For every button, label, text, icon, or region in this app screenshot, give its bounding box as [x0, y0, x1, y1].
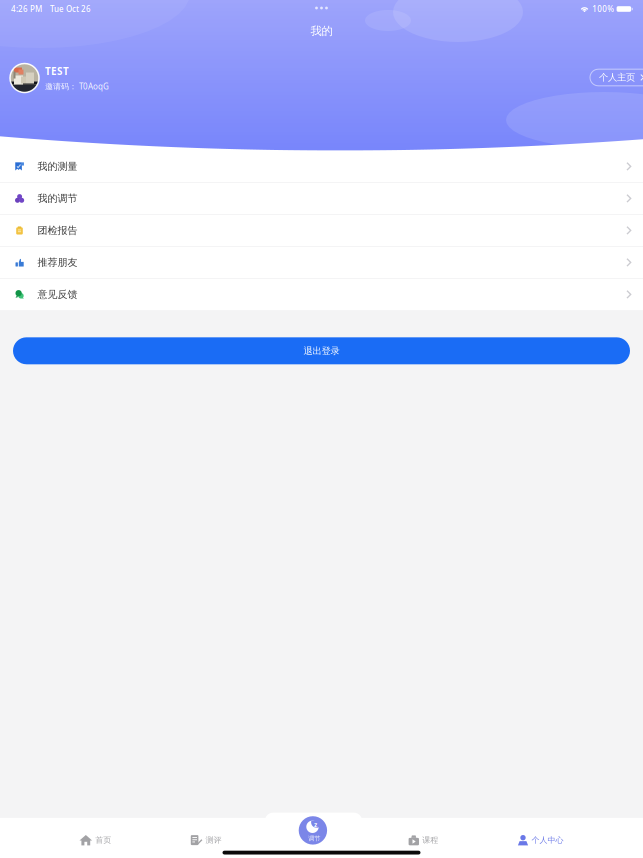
staticText: 4:26 PM — [11, 4, 42, 14]
staticText: 退出登录 — [303, 345, 339, 357]
staticText: 个人中心 — [531, 835, 563, 845]
button[interactable]: 意见反馈 — [0, 279, 643, 310]
staticText: 课程 — [422, 835, 438, 845]
staticText: TEST — [45, 64, 69, 78]
button[interactable]: 我的调节 — [0, 183, 643, 214]
staticText: z — [314, 820, 317, 829]
button[interactable]: 课程 — [409, 828, 438, 852]
staticText: 测评 — [206, 835, 222, 845]
button[interactable]: 测评 — [191, 828, 222, 852]
staticText: 团检报告 — [38, 224, 78, 237]
staticText: Tue Oct 26 — [50, 4, 91, 14]
button[interactable]: 个人中心 — [518, 828, 563, 852]
button[interactable]: 个人主页 — [590, 69, 643, 86]
staticText: 调节 — [308, 835, 320, 842]
staticText: 意见反馈 — [38, 288, 78, 301]
staticText: 我的测量 — [38, 160, 78, 173]
staticText: 个人主页 — [599, 72, 635, 83]
button[interactable]: 退出登录 — [13, 337, 630, 364]
button[interactable]: 团检报告 — [0, 215, 643, 246]
staticText: 邀请码： T0AoqG — [45, 81, 109, 92]
staticText: 100% — [592, 4, 614, 14]
staticText: 我的 — [310, 24, 332, 38]
staticText: 推荐朋友 — [38, 256, 78, 269]
button[interactable]: 我的测量 — [0, 151, 643, 182]
button[interactable]: 调节 — [299, 816, 327, 845]
button[interactable]: 推荐朋友 — [0, 247, 643, 278]
staticText: 我的调节 — [38, 192, 78, 205]
staticText: 首页 — [95, 835, 111, 845]
button[interactable]: 首页 — [79, 828, 111, 852]
